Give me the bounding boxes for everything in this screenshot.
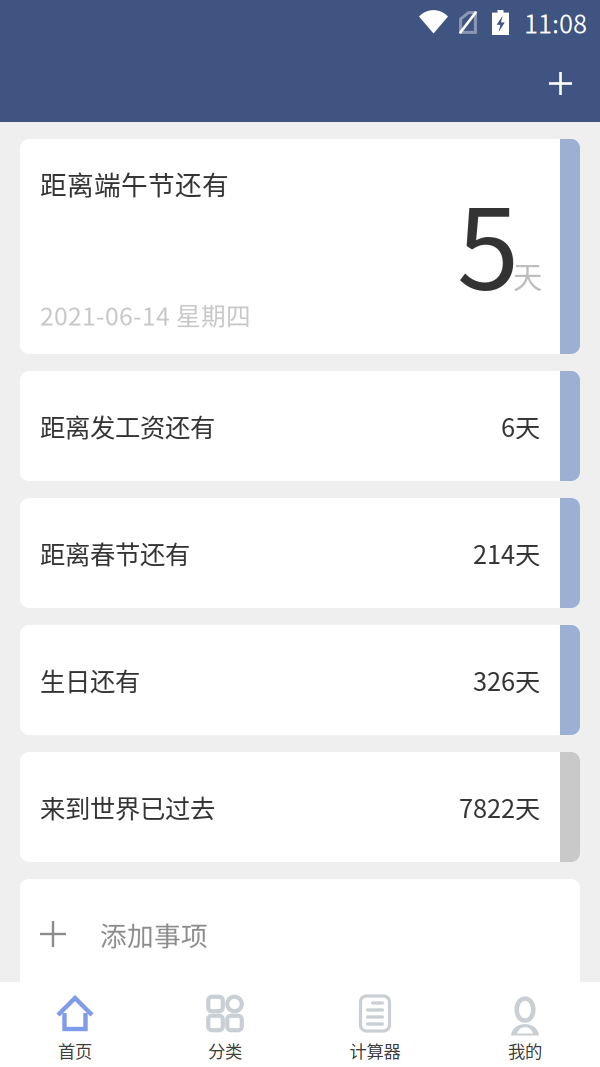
button[interactable]: 分类 <box>150 982 300 1067</box>
staticText: 天 <box>513 254 542 296</box>
staticText: 距离端午节还有 <box>40 164 229 203</box>
button[interactable]: 距离端午节还有 <box>20 139 580 354</box>
button[interactable]: Add event <box>535 58 586 109</box>
staticText: 分类 <box>208 1038 242 1063</box>
staticText: 来到世界已过去 <box>40 789 215 825</box>
staticText: 2021-06-14 星期四 <box>40 297 251 333</box>
staticText: 计算器 <box>349 1038 400 1063</box>
button[interactable]: 首页 <box>0 982 150 1067</box>
staticText: 我的 <box>508 1038 542 1063</box>
staticText: 7822天 <box>459 789 540 825</box>
button[interactable]: 计算器 <box>300 982 450 1067</box>
staticText: 5 <box>457 160 519 322</box>
staticText: 距离春节还有 <box>40 535 190 571</box>
button[interactable]: 添加事项 <box>20 879 580 989</box>
staticText: 6天 <box>501 408 540 444</box>
button[interactable]: 距离春节还有 <box>20 498 580 608</box>
staticText: 326天 <box>473 662 540 698</box>
staticText: 214天 <box>473 535 540 571</box>
staticText: 11:08 <box>524 4 587 41</box>
staticText: 生日还有 <box>40 662 140 698</box>
button[interactable]: 我的 <box>450 982 600 1067</box>
button[interactable]: 距离发工资还有 <box>20 371 580 481</box>
button[interactable]: 来到世界已过去 <box>20 752 580 862</box>
button[interactable]: 生日还有 <box>20 625 580 735</box>
staticText: 距离发工资还有 <box>40 408 215 444</box>
staticText: 首页 <box>58 1038 92 1063</box>
staticText: 添加事项 <box>100 915 208 953</box>
